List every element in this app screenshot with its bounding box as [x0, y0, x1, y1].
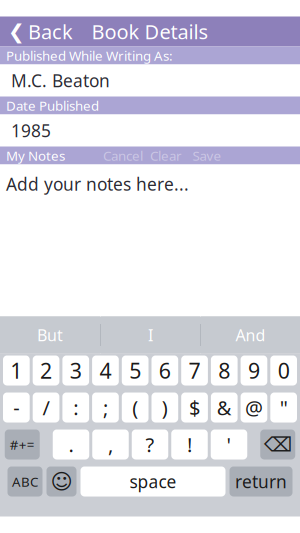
staticText: ❮ — [8, 20, 25, 43]
button[interactable]: @ — [241, 392, 267, 422]
button[interactable]: 6 — [151, 355, 178, 385]
button[interactable]: 7 — [181, 355, 208, 385]
staticText: - — [13, 394, 19, 421]
button[interactable]: . — [53, 429, 89, 459]
staticText: Book Details — [91, 18, 208, 45]
staticText: space — [129, 470, 176, 493]
staticText: 8 — [218, 356, 230, 385]
button[interactable]: return — [229, 466, 292, 496]
button[interactable]: 8 — [211, 355, 238, 385]
staticText: Back — [28, 18, 73, 45]
button[interactable]: , — [92, 429, 129, 459]
staticText: 1985 — [11, 119, 51, 142]
button[interactable]: & — [211, 392, 238, 422]
button[interactable]: / — [33, 392, 59, 422]
staticText: ? — [145, 431, 154, 458]
staticText: ☺ — [50, 469, 72, 494]
staticText: , — [108, 431, 113, 458]
button[interactable]: And — [201, 316, 300, 353]
button[interactable]: ❮ — [0, 16, 83, 46]
staticText: 0 — [278, 356, 290, 385]
staticText: 6 — [159, 356, 171, 385]
button[interactable]: Clear — [145, 146, 187, 164]
button[interactable]: ; — [92, 392, 119, 422]
staticText: : — [73, 394, 78, 421]
staticText: Date Published — [6, 97, 99, 114]
button[interactable]: #+= — [5, 429, 40, 459]
button[interactable]: $ — [181, 392, 208, 422]
staticText: 7 — [189, 356, 201, 385]
staticText: My Notes — [6, 147, 65, 164]
button[interactable]: 0 — [270, 355, 297, 385]
staticText: Cancel — [103, 147, 143, 164]
button[interactable]: 3 — [62, 355, 89, 385]
staticText: @ — [245, 394, 263, 421]
button[interactable]: Cancel — [101, 146, 145, 164]
staticText: ' — [226, 431, 231, 458]
staticText: 9 — [248, 356, 260, 385]
staticText: / — [43, 394, 50, 421]
button[interactable]: 5 — [122, 355, 148, 385]
staticText: ; — [103, 394, 108, 421]
staticText: ! — [187, 431, 192, 458]
button[interactable]: space — [80, 466, 225, 496]
button[interactable]: 4 — [92, 355, 119, 385]
staticText: But — [37, 324, 63, 346]
staticText: 4 — [99, 356, 111, 385]
staticText: I — [148, 324, 153, 346]
staticText: 2 — [40, 356, 52, 385]
staticText: & — [217, 394, 232, 421]
button[interactable]: ! — [171, 429, 208, 459]
button[interactable]: ' — [211, 429, 247, 459]
staticText: " — [280, 394, 288, 421]
button[interactable]: I — [101, 316, 200, 353]
button[interactable]: Save — [187, 146, 227, 164]
button[interactable]: Delete — [260, 429, 295, 459]
staticText: M.C. Beaton — [11, 69, 110, 92]
staticText: 3 — [70, 356, 82, 385]
staticText: Save — [192, 147, 221, 164]
staticText: $ — [189, 394, 200, 421]
staticText: return — [235, 470, 287, 493]
button[interactable]: ABC — [7, 466, 42, 496]
button[interactable]: " — [270, 392, 297, 422]
staticText: ABC — [12, 473, 38, 490]
staticText: Add your notes here... — [6, 172, 189, 195]
staticText: 5 — [129, 356, 141, 385]
button[interactable]: 9 — [241, 355, 267, 385]
staticText: And — [235, 324, 265, 346]
button[interactable]: ? — [132, 429, 168, 459]
staticText: #+= — [10, 436, 35, 453]
button[interactable]: - — [3, 392, 30, 422]
staticText: Clear — [150, 147, 182, 164]
staticText: . — [68, 431, 73, 458]
button[interactable]: ( — [122, 392, 148, 422]
button[interactable]: ) — [151, 392, 178, 422]
button[interactable]: But — [0, 316, 100, 353]
button[interactable]: : — [62, 392, 89, 422]
staticText: Published While Writing As: — [6, 47, 173, 64]
staticText: ) — [162, 394, 168, 421]
button[interactable]: Emoji — [46, 466, 76, 496]
button[interactable]: 1 — [3, 355, 30, 385]
staticText: ⌫ — [264, 433, 292, 456]
staticText: ( — [132, 394, 138, 421]
staticText: 1 — [10, 356, 22, 385]
button[interactable]: 2 — [33, 355, 59, 385]
